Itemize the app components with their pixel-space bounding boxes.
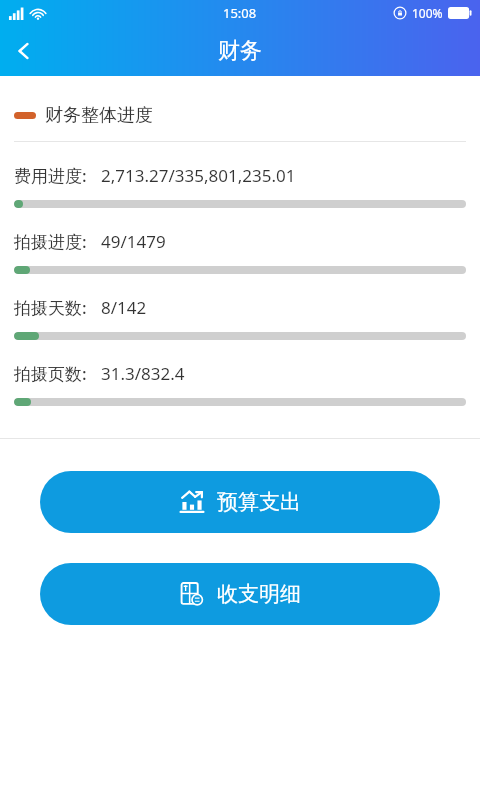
staticText: 拍摄进度: bbox=[14, 230, 87, 253]
staticText: 预算支出 bbox=[217, 489, 301, 515]
staticText: 拍摄页数: bbox=[14, 362, 87, 385]
staticText: 财务 bbox=[218, 37, 262, 65]
button[interactable]: 预算支出 bbox=[40, 471, 440, 533]
staticText: 49/1479 bbox=[101, 230, 166, 253]
staticText: 2,713.27/335,801,235.01 bbox=[101, 164, 296, 187]
button[interactable]: Back bbox=[0, 27, 48, 75]
staticText: 财务整体进度 bbox=[45, 104, 153, 127]
staticText: 8/142 bbox=[101, 296, 147, 319]
staticText: 100% bbox=[412, 5, 443, 21]
staticText: 15:08 bbox=[223, 4, 257, 22]
staticText: 收支明细 bbox=[217, 581, 301, 607]
button[interactable]: 收支明细 bbox=[40, 563, 440, 625]
staticText: 31.3/832.4 bbox=[101, 362, 185, 385]
staticText: 费用进度: bbox=[14, 164, 87, 187]
staticText: 拍摄天数: bbox=[14, 296, 87, 319]
